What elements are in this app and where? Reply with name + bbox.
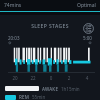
button[interactable]: Sleep stage settings: [83, 23, 94, 34]
staticText: 0: [42, 75, 60, 81]
staticText: 20: [6, 75, 24, 81]
button[interactable]: AWAKE: [0, 85, 100, 92]
staticText: 5:00: [83, 35, 92, 41]
button[interactable]: REM: [0, 94, 100, 100]
staticText: Optimal: [77, 2, 96, 9]
staticText: 22: [24, 75, 42, 81]
staticText: AWAKE: [42, 86, 59, 92]
staticText: 74mins: [4, 2, 22, 9]
staticText: 4: [78, 75, 96, 81]
staticText: 2: [60, 75, 78, 81]
staticText: 1h15min: [61, 86, 80, 92]
button[interactable]: 74mins: [0, 0, 100, 11]
staticText: 20:03: [8, 35, 20, 41]
button[interactable]: Sleep stages hypnogram: [0, 46, 100, 74]
staticText: SLEEP STAGES: [0, 23, 100, 30]
staticText: REM: [19, 94, 30, 100]
staticText: 55min: [32, 94, 46, 100]
